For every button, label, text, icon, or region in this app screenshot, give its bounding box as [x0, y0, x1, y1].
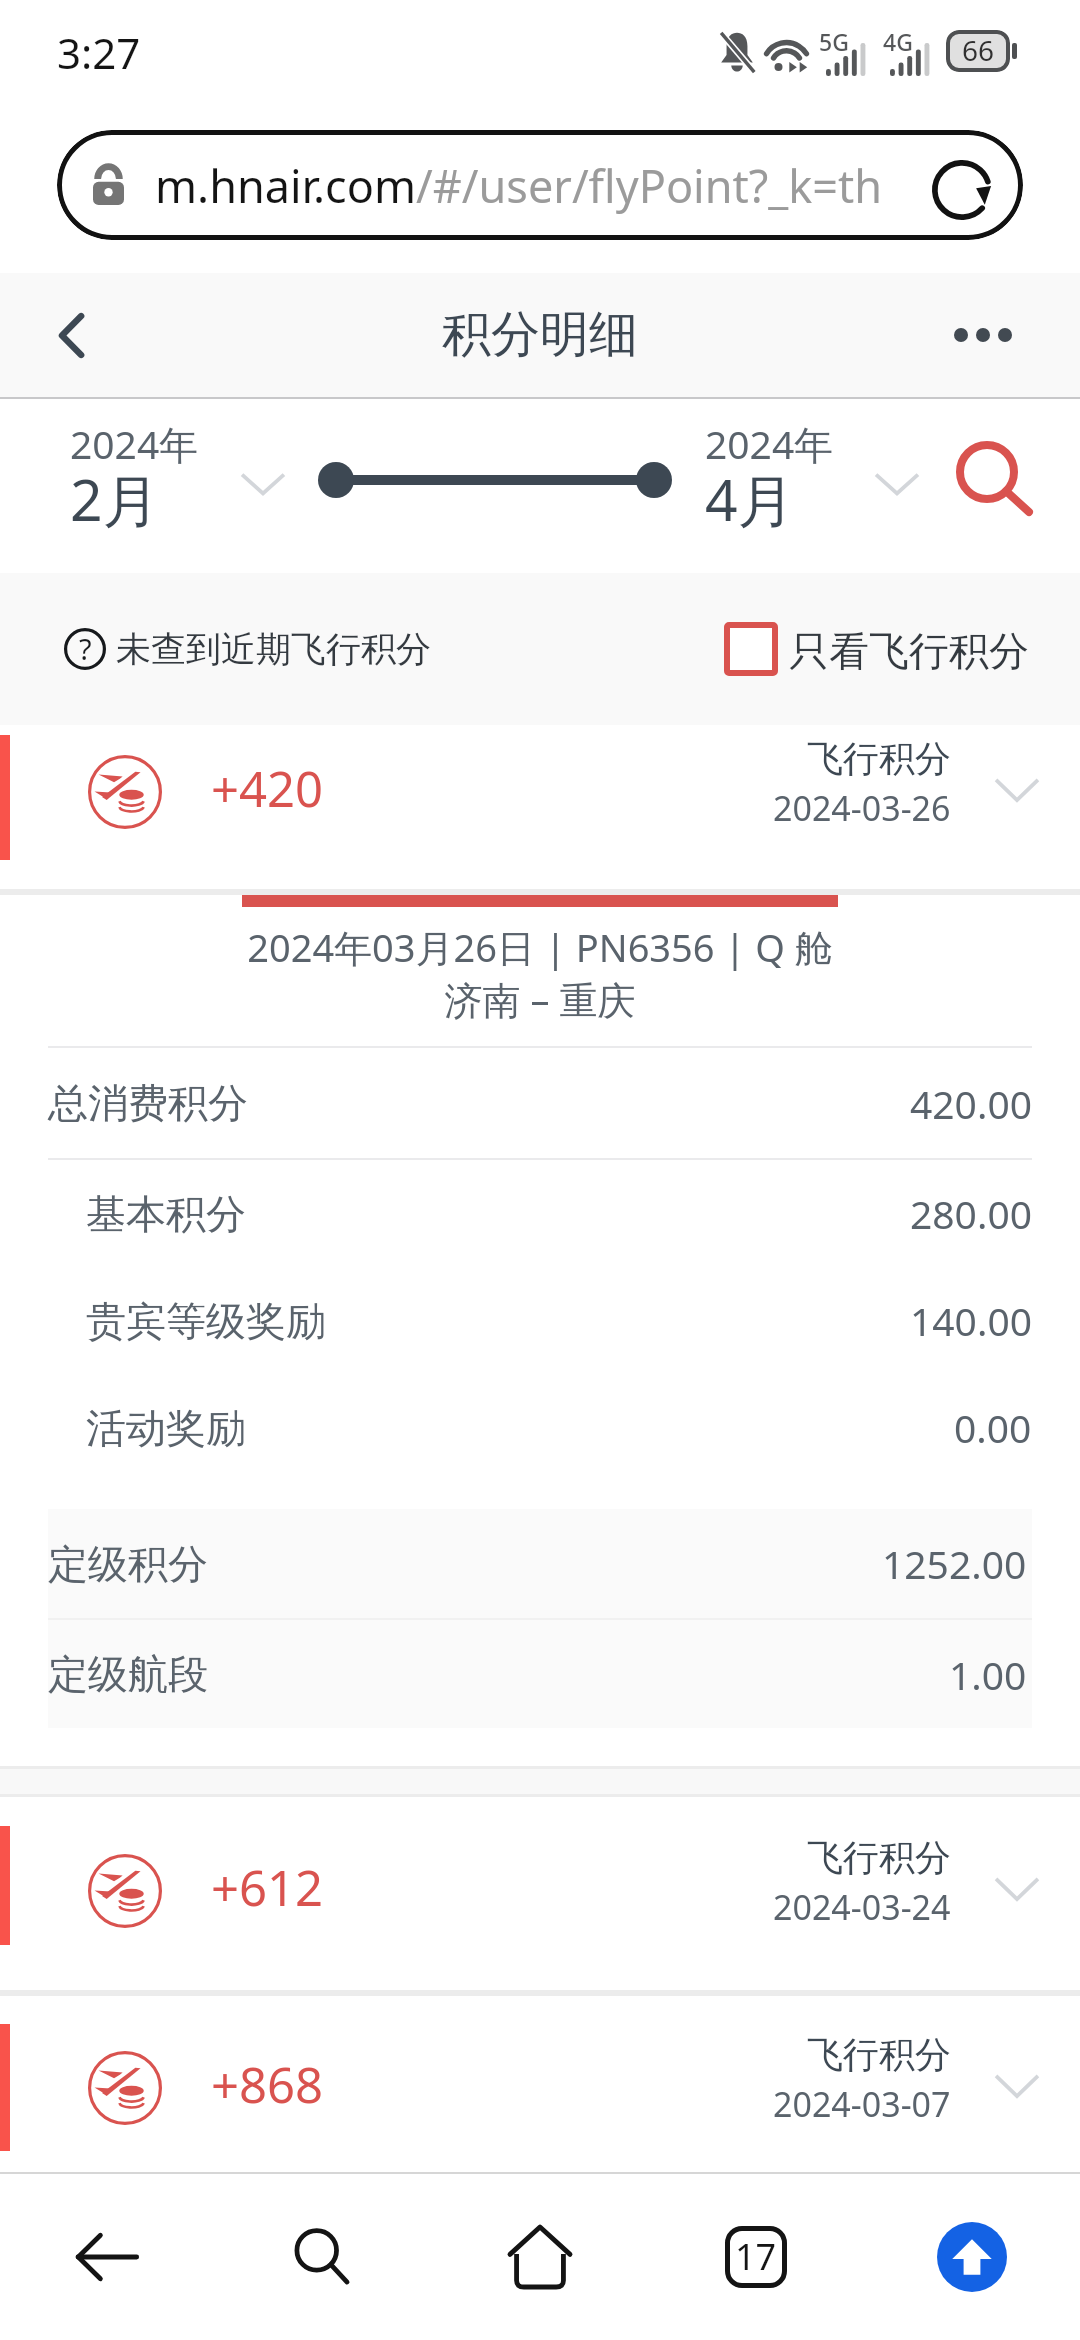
staticText: 2024-03-24 — [773, 1884, 951, 1930]
staticText: 420.00 — [910, 1077, 1032, 1130]
staticText: 济南 – 重庆 — [0, 973, 1080, 1025]
staticText: 积分明细 — [442, 304, 638, 366]
staticText: 2月 — [70, 460, 160, 538]
staticText: 定级航段 — [48, 1649, 208, 1699]
staticText: 4G — [883, 26, 913, 57]
button[interactable]: 2024年 — [705, 417, 845, 537]
button[interactable]: +868 — [0, 1996, 1080, 2172]
staticText: /#/user/flyPoint?_k=th — [416, 155, 883, 216]
button[interactable]: Scroll to top — [937, 2222, 1007, 2292]
button[interactable]: +612 — [0, 1797, 1080, 1990]
button[interactable]: More options — [940, 292, 1026, 378]
staticText: 定级积分 — [48, 1539, 208, 1589]
staticText: 17 — [735, 2232, 777, 2281]
staticText: 基本积分 — [86, 1189, 246, 1239]
staticText: +612 — [211, 1854, 324, 1921]
button[interactable]: m.hnair.com — [57, 130, 1023, 240]
staticText: 2024-03-26 — [773, 785, 951, 831]
button[interactable]: Search — [272, 2207, 372, 2307]
staticText: 总消费积分 — [48, 1078, 248, 1128]
button[interactable]: Reload — [929, 157, 994, 222]
staticText: +420 — [211, 755, 324, 822]
staticText: 140.00 — [910, 1294, 1032, 1347]
staticText: 2024年 — [705, 417, 834, 470]
staticText: 0.00 — [954, 1401, 1032, 1454]
button[interactable]: Home — [490, 2207, 590, 2307]
button[interactable]: Tabs — [706, 2207, 806, 2307]
staticText: 只看飞行积分 — [789, 626, 1029, 676]
button[interactable]: 只看飞行积分 — [724, 624, 1029, 678]
button[interactable]: 2024年 — [70, 417, 210, 537]
staticText: 贵宾等级奖励 — [86, 1296, 326, 1346]
staticText: 5G — [819, 26, 849, 57]
button[interactable]: Back — [26, 292, 112, 378]
button[interactable]: +420 — [0, 725, 1080, 889]
button[interactable]: Search — [940, 424, 1040, 524]
staticText: 2024年 — [70, 417, 199, 470]
staticText: +868 — [211, 2051, 324, 2118]
staticText: 飞行积分 — [807, 736, 951, 781]
staticText: m.hnair.com — [155, 155, 416, 216]
staticText: 4月 — [705, 460, 795, 538]
button[interactable]: Back — [57, 2207, 157, 2307]
staticText: 280.00 — [910, 1187, 1032, 1240]
staticText: 2024年03月26日 | PN6356 | Q 舱 — [0, 921, 1080, 973]
staticText: ? — [79, 629, 92, 668]
staticText: 1.00 — [949, 1648, 1027, 1701]
staticText: 2024-03-07 — [773, 2081, 951, 2127]
staticText: 1252.00 — [882, 1537, 1027, 1590]
staticText: 未查到近期飞行积分 — [116, 627, 431, 671]
staticText: 66 — [962, 31, 995, 69]
staticText: 飞行积分 — [807, 2032, 951, 2077]
staticText: 活动奖励 — [86, 1403, 246, 1453]
staticText: 飞行积分 — [807, 1835, 951, 1880]
staticText: 3:27 — [57, 24, 141, 81]
